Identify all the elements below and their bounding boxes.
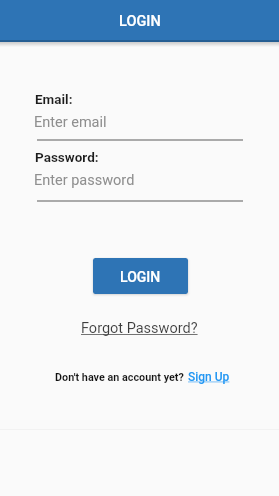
button[interactable] [37,110,243,141]
staticText: Email: [35,91,73,107]
staticText: Enter email [34,114,107,131]
staticText: Enter password [34,172,135,189]
button[interactable]: Sign Up [188,370,230,384]
button[interactable] [37,170,243,202]
staticText: Password: [35,149,99,165]
staticText: LOGIN [120,269,161,285]
staticText: LOGIN [119,13,161,30]
button[interactable]: Forgot Password? [81,320,198,337]
button[interactable]: LOGIN [93,258,188,294]
staticText: Don't have an account yet? [55,371,184,384]
